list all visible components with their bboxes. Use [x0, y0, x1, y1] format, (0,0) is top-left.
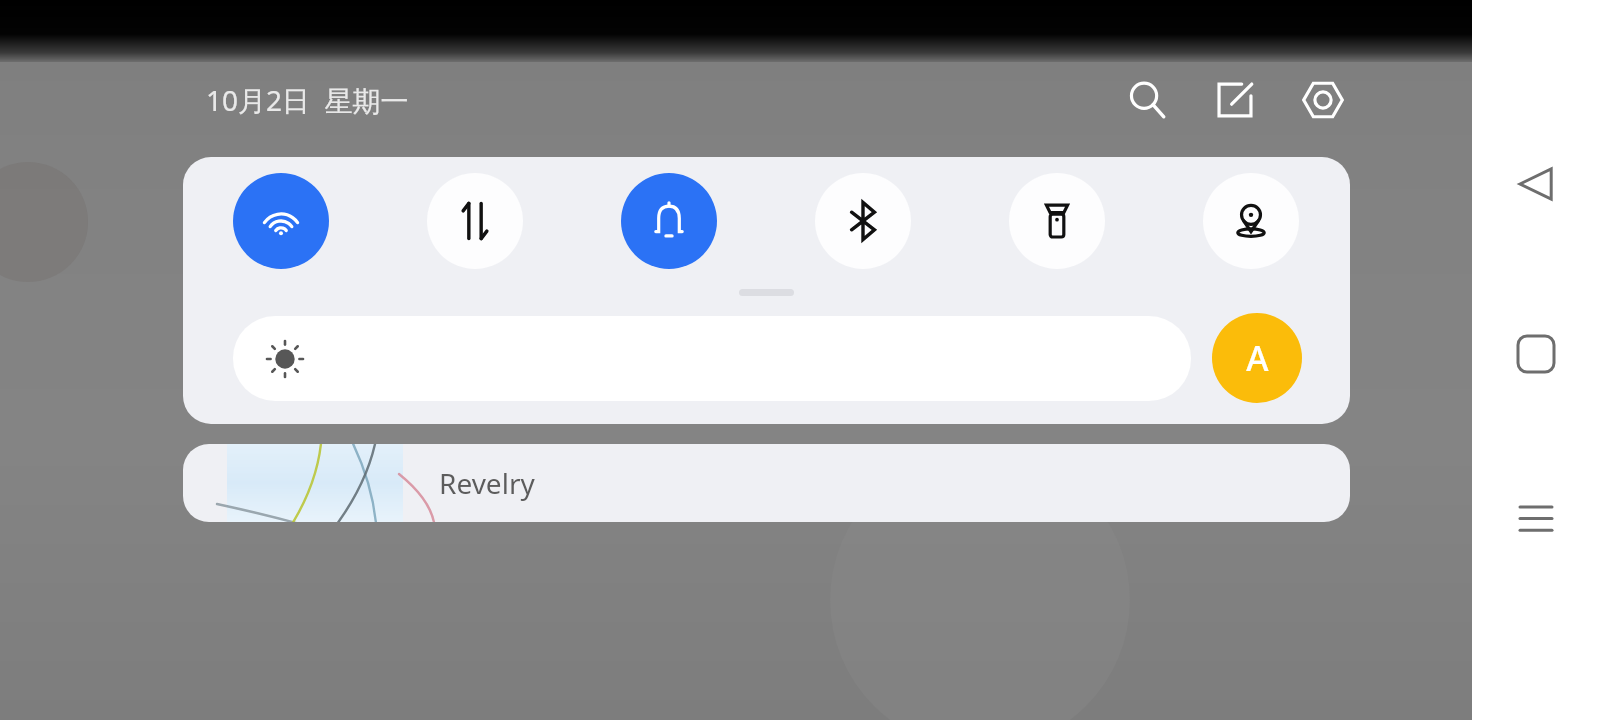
button[interactable]: Home: [1502, 320, 1570, 388]
staticText: 10月2日 星期一: [206, 81, 409, 119]
button[interactable]: Back: [1502, 150, 1570, 218]
staticText: A: [1246, 335, 1269, 381]
staticText: Revelry: [439, 464, 535, 502]
button[interactable]: Settings: [1294, 72, 1352, 128]
button[interactable]: Wi-Fi: [233, 173, 329, 269]
button[interactable]: Revelry: [183, 444, 1350, 522]
button[interactable]: Location: [1203, 173, 1299, 269]
button[interactable]: A: [1212, 313, 1302, 403]
button[interactable]: Mobile data: [427, 173, 523, 269]
button[interactable]: [233, 316, 1191, 401]
button[interactable]: Recents: [1502, 487, 1570, 555]
button[interactable]: Bluetooth: [815, 173, 911, 269]
button[interactable]: Edit: [1206, 72, 1264, 128]
button[interactable]: Search: [1118, 72, 1176, 128]
button[interactable]: Flashlight: [1009, 173, 1105, 269]
button[interactable]: Ring mode: [621, 173, 717, 269]
